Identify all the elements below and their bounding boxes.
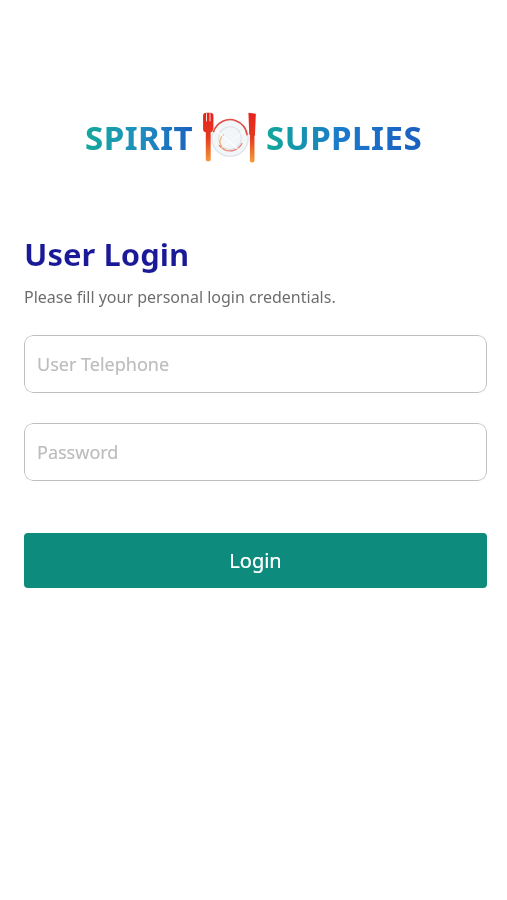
staticText: Please fill your personal login credenti… bbox=[24, 286, 336, 308]
button[interactable]: Login bbox=[24, 533, 487, 588]
staticText: SPIRIT bbox=[85, 115, 194, 160]
button[interactable]: Password bbox=[24, 423, 487, 481]
other: Spirit Supplies logo emblem bbox=[198, 108, 262, 166]
staticText: Password bbox=[37, 440, 119, 465]
staticText: User Telephone bbox=[37, 352, 170, 377]
staticText: SUPPLIES bbox=[266, 115, 423, 160]
staticText: User Login bbox=[24, 233, 190, 275]
staticText: Login bbox=[229, 547, 282, 574]
button[interactable]: User Telephone bbox=[24, 335, 487, 393]
